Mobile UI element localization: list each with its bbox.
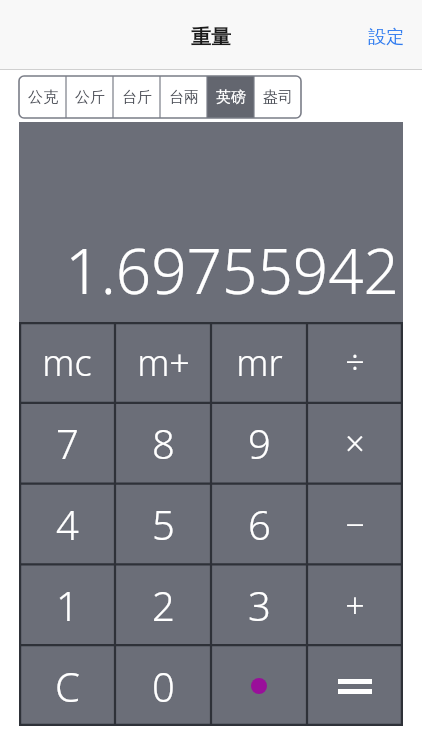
button[interactable]: 2 <box>115 564 211 645</box>
staticText: − <box>345 501 365 547</box>
button[interactable]: 0 <box>115 645 211 726</box>
button[interactable]: − <box>307 483 403 564</box>
button[interactable]: 設定 <box>350 16 422 59</box>
button[interactable]: 英磅 <box>207 76 254 118</box>
button[interactable]: C <box>19 645 115 726</box>
button[interactable]: 5 <box>115 483 211 564</box>
button[interactable]: ÷ <box>307 322 403 402</box>
staticText: 台斤 <box>122 88 152 107</box>
staticText: 1 <box>56 578 79 632</box>
staticText: × <box>345 420 365 466</box>
staticText: 1.69755942 <box>65 228 399 312</box>
button[interactable]: + <box>307 564 403 645</box>
button[interactable]: × <box>307 402 403 483</box>
button[interactable]: 4 <box>19 483 115 564</box>
staticText: 5 <box>152 497 175 551</box>
staticText: mr <box>236 338 283 387</box>
staticText: 3 <box>248 578 271 632</box>
button[interactable]: 3 <box>211 564 307 645</box>
button[interactable] <box>307 645 403 726</box>
staticText: 6 <box>248 497 271 551</box>
staticText: 設定 <box>368 26 404 49</box>
button[interactable]: 台斤 <box>113 76 160 118</box>
button[interactable]: mc <box>19 322 115 402</box>
button[interactable]: Decimal point <box>211 645 307 726</box>
staticText: C <box>55 659 80 713</box>
staticText: 英磅 <box>216 88 246 107</box>
staticText: ÷ <box>345 339 365 385</box>
button[interactable]: 台兩 <box>160 76 207 118</box>
button[interactable]: 9 <box>211 402 307 483</box>
staticText: 盎司 <box>263 88 293 107</box>
button[interactable]: 8 <box>115 402 211 483</box>
staticText: 2 <box>152 578 175 632</box>
staticText: 重量 <box>191 25 231 50</box>
staticText: 0 <box>152 659 175 713</box>
button[interactable]: 7 <box>19 402 115 483</box>
staticText: 公克 <box>28 88 58 107</box>
staticText: 7 <box>56 416 79 470</box>
staticText: 台兩 <box>169 88 199 107</box>
staticText: mc <box>42 338 92 387</box>
staticText: 公斤 <box>75 88 105 107</box>
button[interactable]: 盎司 <box>254 76 301 118</box>
staticText: + <box>345 582 365 628</box>
staticText: 9 <box>248 416 271 470</box>
staticText: 8 <box>152 416 175 470</box>
button[interactable]: 1 <box>19 564 115 645</box>
button[interactable]: mr <box>211 322 307 402</box>
staticText: m+ <box>137 338 190 387</box>
staticText: 4 <box>56 497 79 551</box>
button[interactable]: 公斤 <box>66 76 113 118</box>
button[interactable]: 公克 <box>19 76 66 118</box>
button[interactable]: 6 <box>211 483 307 564</box>
button[interactable]: m+ <box>115 322 211 402</box>
